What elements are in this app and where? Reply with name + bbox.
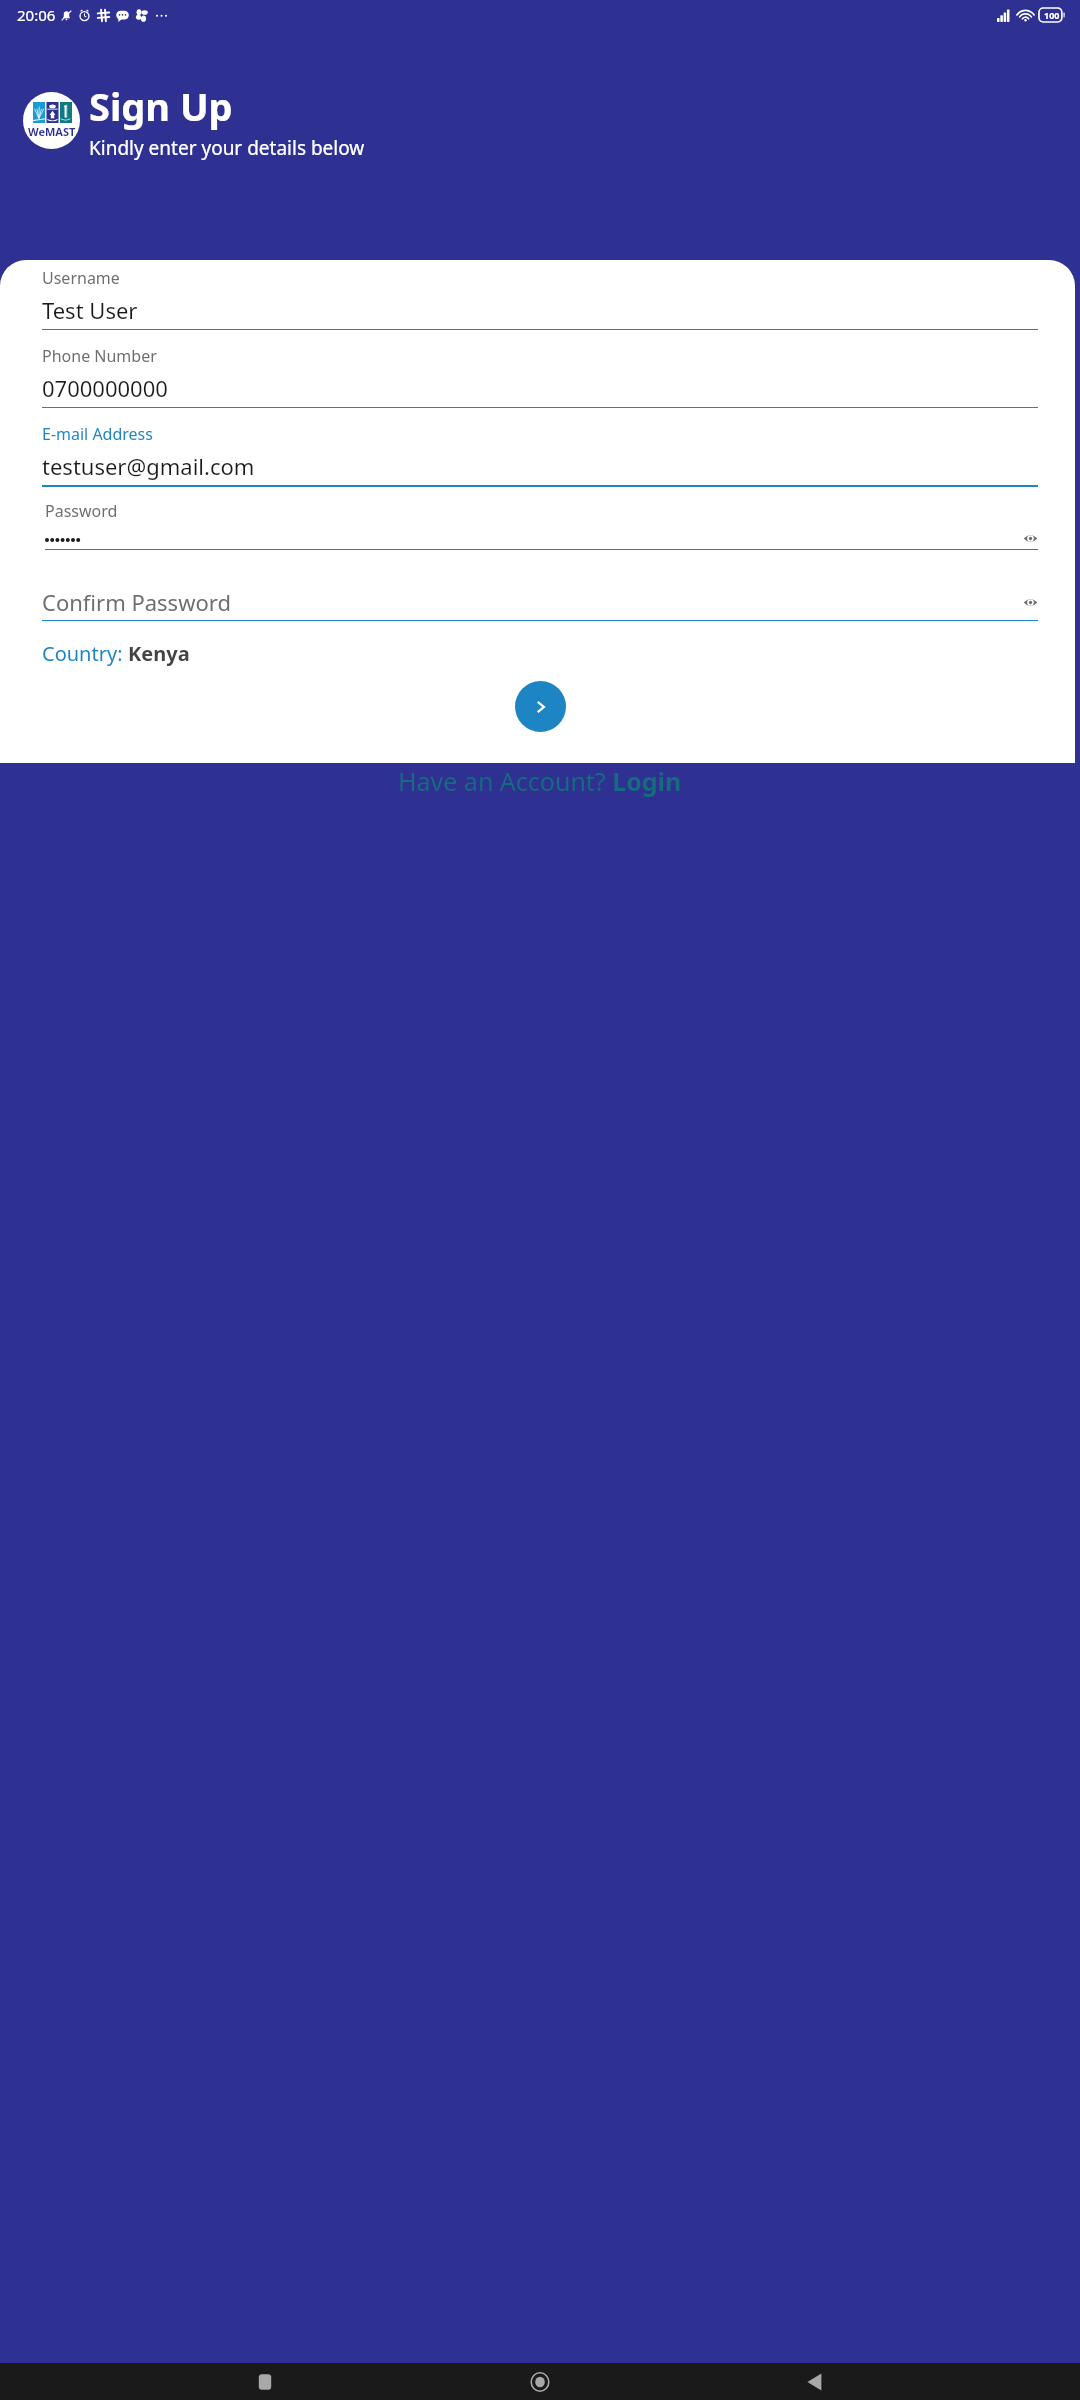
button[interactable]: Toggle password visibility (1023, 595, 1038, 610)
button[interactable]: Back (805, 2372, 825, 2392)
staticText: Test User (42, 295, 138, 325)
button[interactable]: Username (42, 267, 1038, 330)
staticText: testuser@gmail.com (42, 451, 255, 481)
staticText: Have an Account? Login (398, 764, 682, 798)
button[interactable]: Have an Account? Login (398, 764, 682, 798)
button[interactable]: E-mail Address (42, 423, 1038, 487)
button[interactable]: Phone Number (42, 345, 1038, 408)
button[interactable]: Next (515, 681, 566, 732)
staticText: 100 (1044, 9, 1060, 21)
staticText: E-mail Address (42, 423, 153, 445)
staticText: Password (45, 500, 118, 522)
button[interactable]: Home (530, 2372, 550, 2392)
staticText: Kindly enter your details below (89, 135, 365, 161)
staticText: Confirm Password (42, 587, 231, 617)
staticText: Kenya (128, 640, 190, 667)
staticText: 20:06 (17, 5, 56, 25)
button[interactable]: Recents (255, 2372, 275, 2392)
staticText: Sign Up (89, 80, 233, 132)
button[interactable]: Toggle password visibility (1023, 531, 1038, 546)
staticText: Country: (42, 640, 123, 667)
button[interactable]: Country: (42, 640, 190, 667)
staticText: WeMAST (28, 124, 76, 139)
staticText: 0700000000 (42, 373, 168, 403)
staticText: Username (42, 267, 120, 289)
staticText: Phone Number (42, 345, 157, 367)
button[interactable]: Confirm Password (42, 587, 1038, 621)
button[interactable]: Password (45, 500, 1038, 550)
